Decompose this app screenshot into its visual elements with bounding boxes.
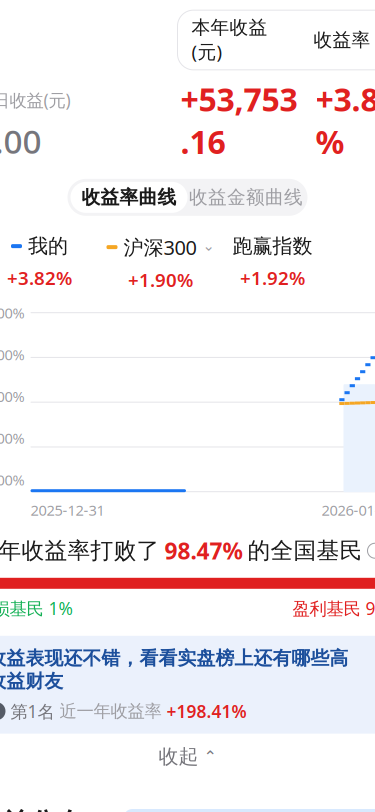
staticText: +2.00% [0,386,24,406]
staticText: 2025-12-31 [30,500,104,520]
staticText: +3.82% [315,78,375,163]
staticText: 0.00% [0,470,24,489]
staticText: i [373,542,375,560]
staticText: 收益率曲线 [81,186,176,209]
button[interactable]: 收益金额曲线 [187,182,304,213]
staticText: +1.00% [0,428,24,448]
staticText: ⌄ [202,237,214,254]
staticText: +3.00% [0,345,24,364]
button[interactable]: 收益表现还不错，看看实盘榜上还有哪些高收益财友 [0,636,375,734]
staticText: 本年收益(元) [191,16,267,64]
staticText: +1.90% [128,267,193,292]
button[interactable]: ⇱ [123,809,375,812]
staticText: +4.00% [0,303,24,322]
staticText: 本年收益率打败了 [0,537,159,565]
staticText: 收益金额曲线 [189,186,303,209]
staticText: +198.41% [166,700,246,723]
staticText: 沪深300 [123,234,196,260]
button[interactable]: 收益率 [313,28,375,51]
staticText: 2026-01-05 [321,500,375,520]
staticText: 收起 [158,744,198,769]
staticText: 0.00 [0,119,41,163]
staticText: ⌃ [203,748,216,766]
staticText: +53,753.16 [180,78,297,163]
staticText: +3.82% [7,265,72,290]
staticText: 收益率 [313,28,370,51]
staticText: 第1名 [10,700,54,723]
staticText: 我的 [28,234,68,258]
staticText: +1.92% [240,265,305,290]
staticText: 近一年收益率 [59,700,161,722]
button[interactable]: More info [367,542,375,560]
staticText: 跑赢指数 [232,234,312,258]
staticText: 盈利基民 99% [292,597,375,620]
staticText: 收益表现还不错，看看实盘榜上还有哪些高收益财友 [0,647,348,693]
staticText: 收益分布 [0,807,83,812]
button[interactable]: 收益率曲线 [70,182,187,213]
staticText: 昨日收益(元) [0,89,70,112]
button[interactable]: 收起 [0,734,375,780]
staticText: 98.47% [164,536,242,566]
staticText: 的全国基民 [247,537,362,565]
staticText: 亏损基民 1% [0,597,72,620]
